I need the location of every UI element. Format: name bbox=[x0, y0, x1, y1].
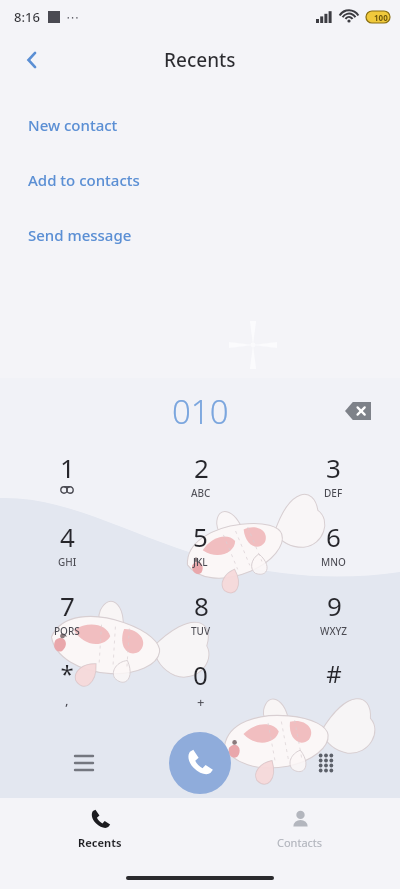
staticText: MNO bbox=[321, 555, 346, 569]
button[interactable]: Dialpad bbox=[304, 741, 348, 785]
button[interactable]: Backspace bbox=[336, 389, 380, 433]
button[interactable]: Call bbox=[169, 732, 231, 794]
button[interactable]: 2 bbox=[134, 444, 267, 513]
staticText: 1 bbox=[60, 450, 75, 485]
button[interactable]: Back bbox=[8, 36, 56, 84]
staticText: ABC bbox=[191, 486, 211, 500]
button[interactable]: 1 bbox=[0, 444, 134, 513]
button[interactable]: 8 bbox=[134, 582, 267, 651]
button[interactable]: 6 bbox=[267, 513, 400, 582]
staticText: 0 bbox=[193, 657, 208, 692]
button[interactable]: 5 bbox=[134, 513, 267, 582]
staticText: 4 bbox=[60, 519, 75, 554]
staticText: TUV bbox=[191, 624, 211, 638]
staticText: GHI bbox=[58, 555, 77, 569]
button[interactable]: * bbox=[0, 651, 134, 720]
button[interactable]: New contact bbox=[0, 108, 400, 141]
staticText: 2 bbox=[194, 450, 209, 485]
staticText: , bbox=[65, 691, 69, 709]
button[interactable]: # bbox=[267, 651, 400, 720]
staticText: ⋯ bbox=[66, 10, 79, 25]
button[interactable]: Recents bbox=[0, 798, 200, 860]
button[interactable]: 4 bbox=[0, 513, 134, 582]
staticText: 9 bbox=[327, 588, 342, 623]
staticText: Recents bbox=[78, 835, 122, 850]
staticText: # bbox=[326, 657, 342, 690]
staticText: PQRS bbox=[54, 624, 80, 638]
staticText: JKL bbox=[193, 555, 208, 569]
staticText: DEF bbox=[324, 486, 343, 500]
staticText: 6 bbox=[326, 519, 341, 554]
button[interactable]: Send message bbox=[0, 218, 400, 251]
staticText: 100 bbox=[374, 12, 388, 23]
staticText: New contact bbox=[28, 115, 118, 135]
button[interactable]: Menu bbox=[62, 741, 106, 785]
button[interactable]: Add to contacts bbox=[0, 163, 400, 196]
button[interactable]: 0 bbox=[134, 651, 267, 720]
staticText: Contacts bbox=[277, 835, 323, 850]
staticText: Send message bbox=[28, 225, 132, 245]
button[interactable]: 7 bbox=[0, 582, 134, 651]
staticText: 010 bbox=[172, 389, 229, 434]
staticText: * bbox=[60, 657, 74, 690]
staticText: + bbox=[197, 693, 205, 711]
staticText: 3 bbox=[326, 450, 341, 485]
button[interactable]: 3 bbox=[267, 444, 400, 513]
staticText: Add to contacts bbox=[28, 170, 140, 190]
staticText: WXYZ bbox=[320, 624, 348, 638]
staticText: 8:16 bbox=[14, 8, 40, 26]
staticText: 5 bbox=[193, 519, 208, 554]
button[interactable]: Contacts bbox=[200, 798, 400, 860]
staticText: 8 bbox=[194, 588, 209, 623]
staticText: Recents bbox=[164, 47, 236, 73]
staticText: 7 bbox=[60, 588, 75, 623]
button[interactable]: 9 bbox=[267, 582, 400, 651]
